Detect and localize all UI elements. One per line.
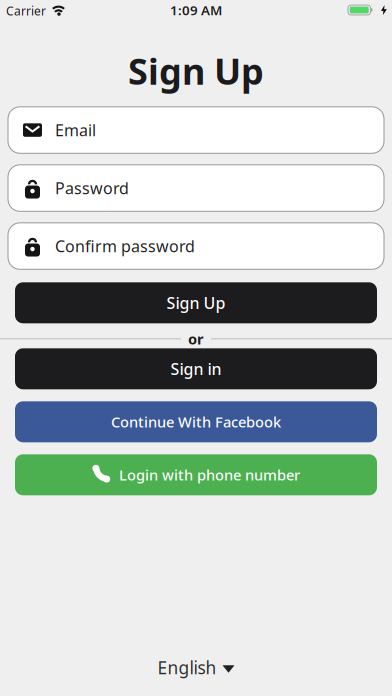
button[interactable]: Confirm password [8,223,384,269]
staticText: Sign Up [166,292,225,313]
button[interactable]: Continue With Facebook [15,401,377,442]
button[interactable]: Sign Up [15,282,377,323]
button[interactable]: Login with phone number [15,454,377,495]
staticText: Carrier [6,3,46,19]
button[interactable]: Email [8,107,384,153]
staticText: Continue With Facebook [111,412,281,432]
staticText: English [157,656,216,679]
staticText: Login with phone number [119,465,300,485]
button[interactable]: English [157,656,234,679]
staticText: Sign in [170,358,221,379]
staticText: Password [55,177,129,199]
staticText: or [188,329,204,349]
button[interactable]: Password [8,165,384,211]
staticText: 1:09 AM [170,1,222,19]
button[interactable]: Sign in [15,348,377,389]
staticText: Sign Up [128,47,264,95]
staticText: Email [55,119,96,141]
staticText: Confirm password [55,235,195,257]
